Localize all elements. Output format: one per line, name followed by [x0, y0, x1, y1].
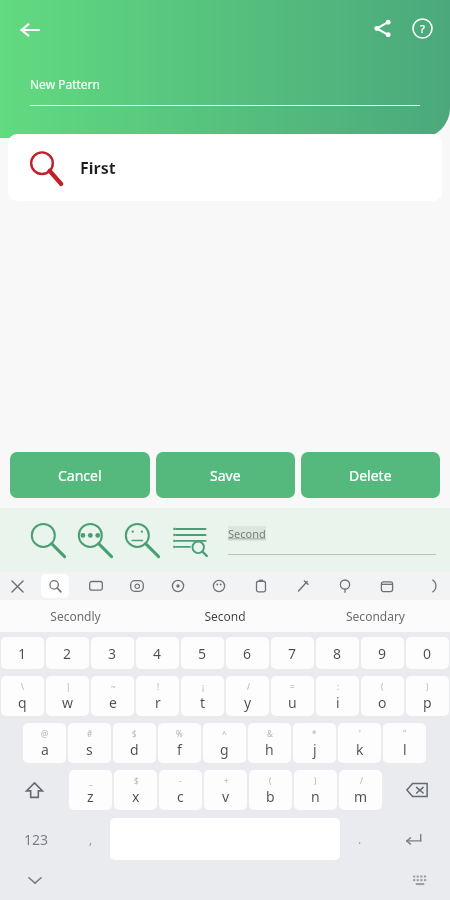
- button[interactable]: 3: [91, 637, 134, 669]
- staticText: x: [132, 787, 140, 806]
- staticText: Second: [228, 526, 266, 541]
- button[interactable]: Stickers: [198, 572, 240, 600]
- button[interactable]: 8: [316, 637, 359, 669]
- button[interactable]: &: [248, 723, 291, 763]
- button[interactable]: Calendar: [366, 572, 408, 600]
- button[interactable]: Close toolbar: [0, 572, 34, 600]
- button[interactable]: :: [316, 676, 359, 716]
- button[interactable]: 5: [181, 637, 224, 669]
- staticText: s: [86, 740, 93, 759]
- button[interactable]: !: [136, 676, 179, 716]
- staticText: 2: [63, 644, 72, 663]
- button[interactable]: ^: [203, 723, 246, 763]
- staticText: z: [87, 787, 94, 806]
- staticText: o: [378, 693, 387, 712]
- button[interactable]: 4: [136, 637, 179, 669]
- button[interactable]: #: [68, 723, 111, 763]
- staticText: j: [313, 740, 317, 759]
- button[interactable]: Backspace: [384, 769, 449, 811]
- button[interactable]: (: [249, 770, 292, 810]
- button[interactable]: _: [69, 770, 112, 810]
- staticText: y: [244, 693, 252, 712]
- button[interactable]: /: [226, 676, 269, 716]
- staticText: /: [247, 681, 250, 692]
- staticText: ": [403, 728, 407, 739]
- button[interactable]: Comma: [73, 816, 108, 862]
- button[interactable]: Enter: [379, 816, 449, 862]
- button[interactable]: Help: [402, 8, 442, 48]
- button[interactable]: 9: [361, 637, 404, 669]
- button[interactable]: 7: [271, 637, 314, 669]
- button[interactable]: Search: [34, 572, 75, 600]
- staticText: 7: [288, 644, 297, 663]
- button[interactable]: First: [8, 134, 442, 201]
- button[interactable]: Save: [156, 452, 295, 498]
- button[interactable]: (: [361, 676, 404, 716]
- staticText: 9: [378, 644, 387, 663]
- staticText: e: [109, 693, 117, 712]
- button[interactable]: @: [23, 723, 66, 763]
- button[interactable]: Shift: [1, 769, 67, 811]
- button[interactable]: $: [114, 770, 157, 810]
- staticText: r: [155, 693, 161, 712]
- button[interactable]: =: [271, 676, 314, 716]
- button[interactable]: Settings: [157, 572, 198, 600]
- button[interactable]: 123: [1, 816, 71, 862]
- button[interactable]: Keyboard layout: [390, 862, 450, 898]
- button[interactable]: |: [46, 676, 89, 716]
- button[interactable]: Clipboard: [240, 572, 282, 600]
- button[interactable]: ': [338, 723, 381, 763]
- staticText: ¡: [202, 681, 205, 692]
- staticText: u: [288, 693, 297, 712]
- button[interactable]: \: [1, 676, 44, 716]
- button[interactable]: $: [113, 723, 156, 763]
- button[interactable]: %: [158, 723, 201, 763]
- button[interactable]: Search options: [71, 517, 117, 563]
- button[interactable]: -: [159, 770, 202, 810]
- button[interactable]: Image: [116, 572, 157, 600]
- button[interactable]: Search: [24, 517, 70, 563]
- button[interactable]: Location: [324, 572, 366, 600]
- button[interactable]: Secondary: [300, 600, 450, 632]
- staticText: 123: [24, 830, 49, 849]
- button[interactable]: ": [383, 723, 426, 763]
- button[interactable]: Delete: [301, 452, 440, 498]
- button[interactable]: ~: [91, 676, 134, 716]
- button[interactable]: Share: [362, 8, 402, 48]
- button[interactable]: GIF: [75, 572, 116, 600]
- button[interactable]: Cancel: [10, 452, 150, 498]
- staticText: m: [354, 787, 368, 806]
- staticText: ): [426, 681, 429, 692]
- button[interactable]: Search list: [166, 517, 212, 563]
- button[interactable]: 6: [226, 637, 269, 669]
- button[interactable]: 0: [406, 637, 449, 669]
- staticText: New Pattern: [30, 76, 100, 92]
- staticText: !: [157, 681, 160, 692]
- button[interactable]: *: [293, 723, 336, 763]
- button[interactable]: Second: [150, 600, 300, 632]
- button[interactable]: Draw: [282, 572, 324, 600]
- button[interactable]: +: [204, 770, 247, 810]
- staticText: #: [87, 728, 93, 739]
- button[interactable]: ): [294, 770, 337, 810]
- staticText: 1: [18, 644, 27, 663]
- button[interactable]: Back: [10, 10, 50, 50]
- button[interactable]: Hide keyboard: [0, 862, 70, 898]
- staticText: n: [311, 787, 320, 806]
- staticText: p: [423, 693, 432, 712]
- button[interactable]: More: [408, 572, 450, 600]
- staticText: Cancel: [58, 466, 102, 485]
- button[interactable]: ¡: [181, 676, 224, 716]
- button[interactable]: No results: [118, 517, 164, 563]
- button[interactable]: Secondly: [0, 600, 150, 632]
- staticText: f: [177, 740, 182, 759]
- button[interactable]: ): [406, 676, 449, 716]
- staticText: -: [179, 775, 182, 786]
- staticText: |: [66, 681, 71, 692]
- button[interactable]: 1: [1, 637, 44, 669]
- staticText: Second: [204, 608, 246, 624]
- button[interactable]: 2: [46, 637, 89, 669]
- button[interactable]: /: [339, 770, 382, 810]
